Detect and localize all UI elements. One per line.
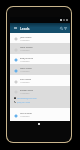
staticText: John Smith bbox=[20, 36, 32, 39]
button[interactable]: Call lead bbox=[10, 100, 70, 104]
staticText: Mark Olsen bbox=[20, 67, 32, 70]
staticText: (555) 201-0359 bbox=[17, 101, 31, 104]
button[interactable]: John Smith bbox=[10, 33, 70, 43]
staticText: 11/02/2021 bbox=[20, 39, 30, 41]
staticText: 11/02/2021 bbox=[20, 92, 30, 94]
staticText: 11/02/2021 bbox=[20, 81, 30, 83]
button[interactable]: Open navigation menu bbox=[11, 23, 19, 33]
staticText: 11/02/2021 bbox=[20, 115, 30, 117]
button[interactable]: Sara Smith bbox=[10, 75, 70, 86]
staticText: Rachel Wells bbox=[20, 89, 34, 92]
button[interactable]: Mike Wilson bbox=[10, 43, 70, 54]
button[interactable]: Sort bbox=[63, 23, 67, 33]
staticText: 11/02/2021 bbox=[20, 49, 30, 51]
button[interactable]: Bad Johnson bbox=[10, 54, 70, 64]
button[interactable]: Tom Parker bbox=[10, 108, 70, 121]
staticText: Sara Smith bbox=[20, 78, 32, 81]
button[interactable]: Search bbox=[59, 23, 63, 33]
button[interactable]: Email lead bbox=[10, 96, 70, 100]
staticText: Bad Johnson bbox=[20, 57, 34, 60]
button[interactable]: Rachel Wells bbox=[10, 86, 70, 96]
staticText: 11/02/2021 bbox=[20, 60, 30, 62]
staticText: Mike Wilson bbox=[20, 46, 33, 49]
staticText: 11/02/2021 bbox=[20, 70, 30, 72]
staticText: Tom Parker bbox=[20, 112, 32, 115]
staticText: Leads bbox=[20, 26, 30, 31]
button[interactable]: Mark Olsen bbox=[10, 64, 70, 75]
staticText: rachelwells@mail.com bbox=[17, 97, 37, 100]
